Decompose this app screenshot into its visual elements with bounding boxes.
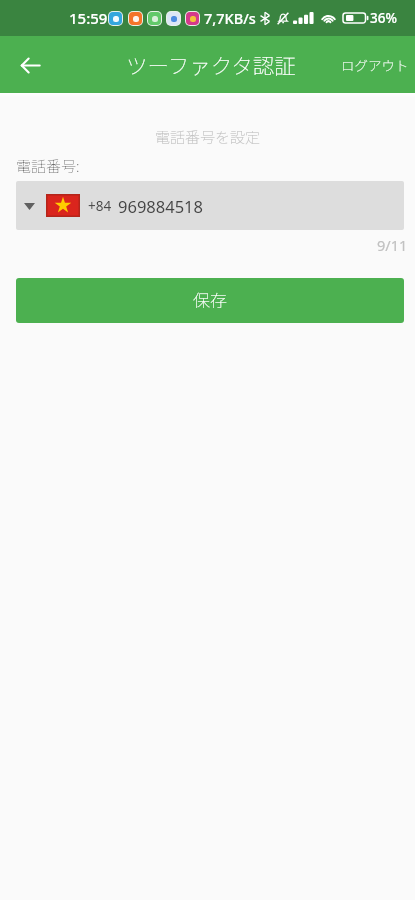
button[interactable]: 保存 <box>16 278 404 323</box>
staticText: 電話番号を設定 <box>155 126 261 148</box>
staticText: 9/11 <box>377 235 408 253</box>
button[interactable]: Back <box>6 41 54 89</box>
staticText: ログアウト <box>341 55 409 75</box>
staticText: 36% <box>370 9 397 27</box>
button[interactable]: Select country code <box>20 191 38 221</box>
staticText: 保存 <box>193 287 227 312</box>
staticText: +84 <box>88 197 112 215</box>
staticText: 15:59 <box>69 8 108 28</box>
staticText: 電話番号: <box>16 155 80 177</box>
staticText: 969884518 <box>118 195 203 217</box>
button[interactable]: Select country code <box>16 181 404 230</box>
staticText: 7,7KB/s <box>204 8 256 28</box>
staticText: ツーファクタ認証 <box>126 49 296 80</box>
button[interactable]: ログアウト <box>335 45 410 85</box>
